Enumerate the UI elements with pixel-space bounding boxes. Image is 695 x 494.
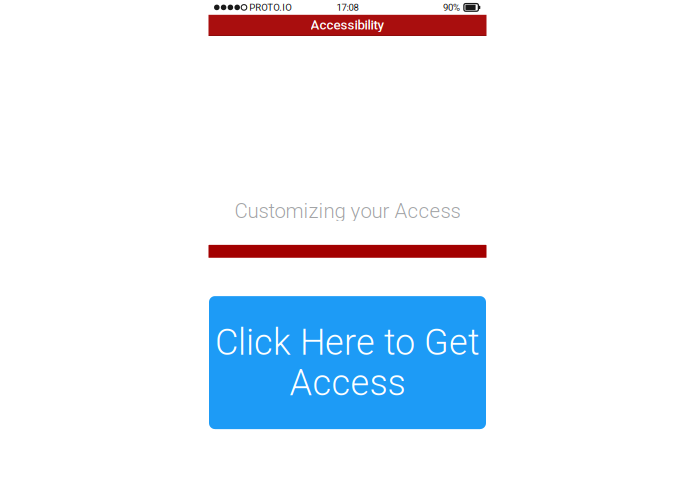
staticText: 17:08 (336, 2, 358, 13)
staticText: Customizing your Access (234, 199, 460, 223)
button[interactable]: Click Here to Get (209, 296, 486, 429)
staticText: PROTO.IO (249, 2, 292, 13)
staticText: Access (289, 362, 405, 404)
staticText: Accessibility (310, 17, 384, 33)
staticText: Click Here to Get (215, 321, 480, 363)
staticText: 90% (443, 2, 460, 13)
